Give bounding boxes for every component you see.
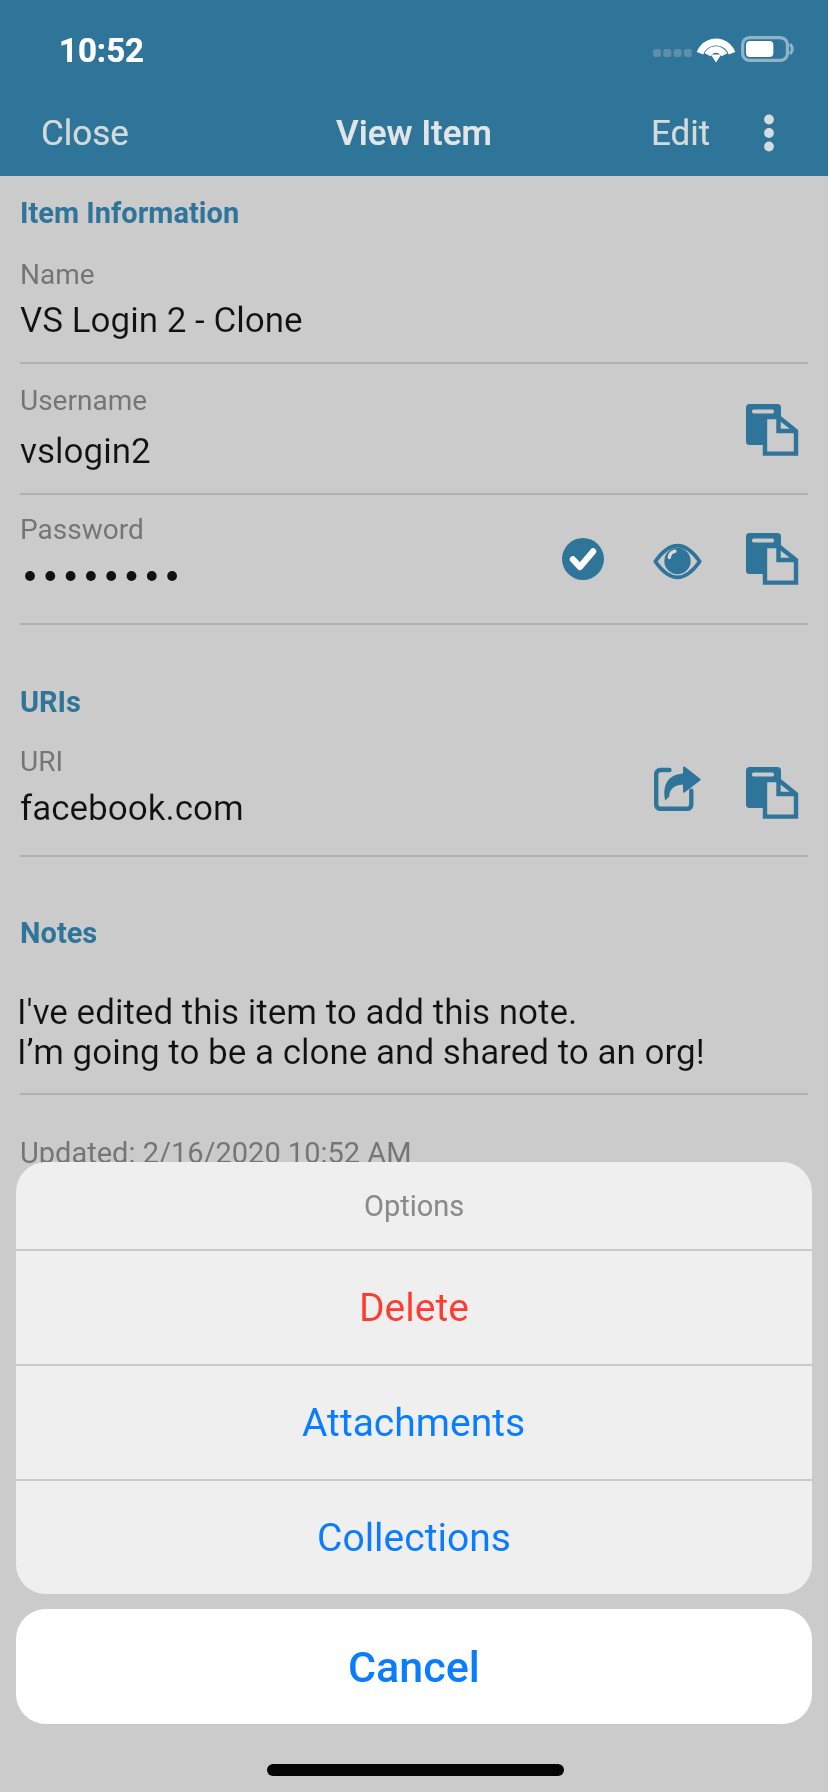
staticText: Cancel (348, 1642, 480, 1692)
button[interactable]: Launch URI (637, 748, 717, 828)
staticText: Notes (20, 916, 98, 950)
button[interactable]: Close (20, 103, 150, 164)
staticText: Password (20, 513, 144, 546)
staticText: Edit (651, 113, 711, 154)
staticText: Options (364, 1189, 465, 1223)
staticText: Name (20, 258, 95, 291)
staticText: URIs (20, 685, 81, 719)
staticText: URI (20, 745, 64, 778)
button[interactable]: More options (733, 97, 805, 169)
staticText: Close (41, 113, 129, 154)
staticText: Username (20, 384, 148, 417)
staticText: View Item (0, 113, 828, 154)
button[interactable]: Toggle visibility (637, 521, 717, 601)
staticText: Attachments (302, 1400, 526, 1446)
button[interactable]: Attachments (16, 1366, 812, 1480)
button[interactable]: Check password (543, 519, 623, 599)
staticText: facebook.com (20, 788, 244, 829)
button[interactable]: Cancel (16, 1609, 812, 1724)
button[interactable]: Copy username (731, 389, 811, 469)
staticText: vslogin2 (20, 431, 151, 472)
staticText: I've edited this item to add this note. … (17, 992, 705, 1072)
staticText: Updated: 2/16/2020 10:52 AM (20, 1136, 412, 1170)
staticText: VS Login 2 - Clone (20, 300, 303, 341)
staticText: Collections (317, 1515, 511, 1561)
button[interactable]: Copy password (731, 518, 811, 598)
button[interactable]: Edit (630, 103, 732, 164)
button[interactable]: Collections (16, 1481, 812, 1594)
staticText: Delete (359, 1285, 469, 1331)
staticText: Item Information (20, 196, 240, 230)
button[interactable]: Delete (16, 1251, 812, 1365)
staticText: 10:52 (59, 31, 145, 70)
button[interactable]: Copy URI (731, 752, 811, 832)
